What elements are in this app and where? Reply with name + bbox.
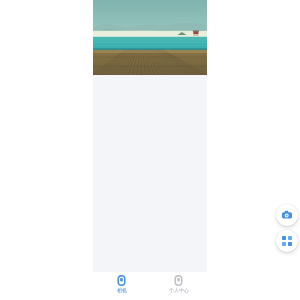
button[interactable]: 个人中心: [150, 272, 207, 300]
button[interactable]: Camera: [276, 204, 298, 226]
staticText: 相机: [117, 287, 127, 293]
button[interactable]: Apps grid: [276, 230, 298, 252]
button[interactable]: 相机: [93, 272, 150, 300]
staticText: 个人中心: [169, 287, 189, 293]
